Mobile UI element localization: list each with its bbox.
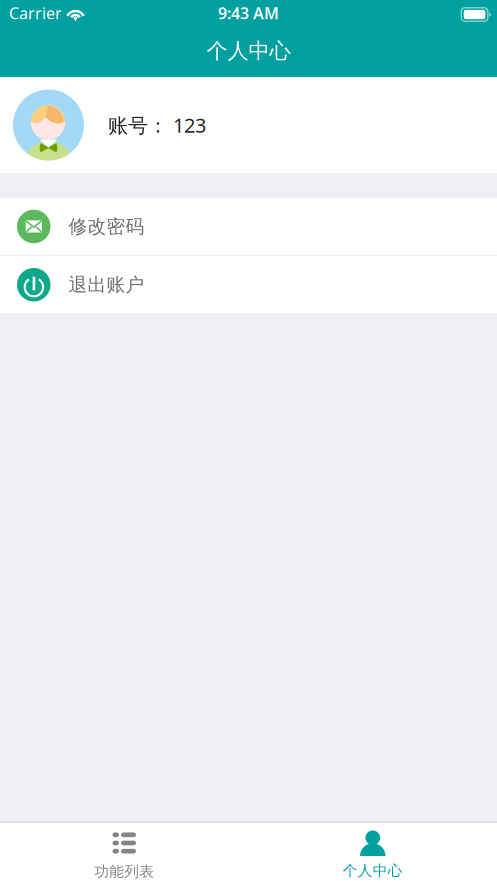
button[interactable]: 修改密码 [0,198,497,255]
button[interactable]: 个人中心 [248,823,497,883]
staticText: Carrier [9,2,62,24]
staticText: 功能列表 [94,862,154,880]
staticText: 修改密码 [68,215,144,238]
staticText: 账号： 123 [108,112,206,138]
staticText: 9:43 AM [218,2,279,24]
staticText: 个人中心 [343,861,403,879]
staticText: 退出账户 [68,273,144,296]
button[interactable]: 功能列表 [0,823,248,883]
staticText: 个人中心 [206,38,290,64]
button[interactable]: 退出账户 [0,256,497,313]
